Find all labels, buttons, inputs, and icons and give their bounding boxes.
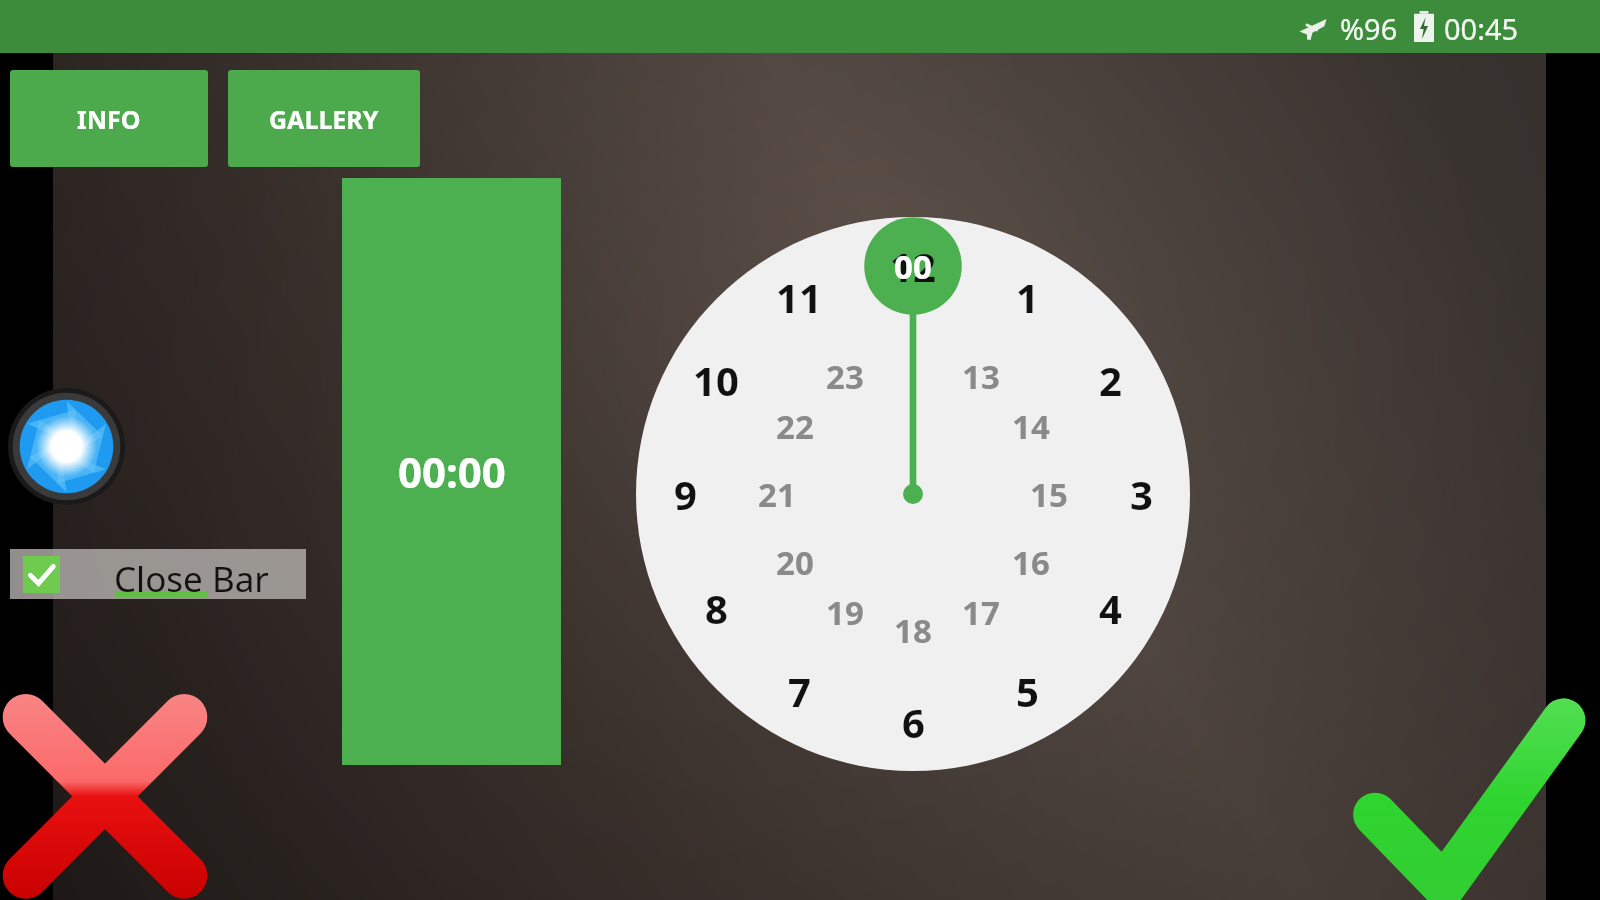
staticText: 14 [1012, 404, 1050, 449]
staticText: 18 [894, 608, 932, 653]
staticText: 00:00 [398, 443, 506, 500]
staticText: 16 [1012, 540, 1050, 585]
staticText: 20 [776, 540, 814, 585]
staticText: 1 [1016, 270, 1039, 324]
button[interactable]: INFO [10, 70, 208, 167]
staticText: 4 [1099, 581, 1122, 635]
staticText: 2 [1099, 353, 1122, 407]
staticText: 11 [776, 270, 822, 324]
staticText: INFO [77, 102, 141, 136]
button[interactable]: 1 [636, 217, 1190, 771]
staticText: 21 [758, 472, 796, 517]
staticText: 8 [705, 581, 728, 635]
staticText: 6 [902, 695, 925, 749]
staticText: 10 [693, 353, 739, 407]
button[interactable]: Cancel [0, 682, 215, 900]
staticText: 23 [826, 354, 864, 399]
staticText: 7 [788, 664, 811, 718]
button[interactable]: Confirm [1352, 688, 1582, 900]
staticText: 9 [674, 467, 697, 521]
button[interactable]: GALLERY [228, 70, 420, 167]
staticText: 17 [962, 590, 1000, 635]
button[interactable]: 00:00 [342, 178, 561, 765]
staticText: 22 [776, 404, 814, 449]
staticText: %96 [1340, 9, 1398, 48]
button[interactable]: Close Bar [10, 549, 306, 599]
staticText: 19 [826, 590, 864, 635]
staticText: 12 [890, 239, 936, 293]
staticText: GALLERY [269, 102, 379, 136]
staticText: 5 [1016, 664, 1039, 718]
staticText: 15 [1030, 472, 1068, 517]
staticText: 00 [894, 244, 932, 289]
staticText: Close Bar [114, 555, 269, 603]
button[interactable]: Camera [8, 388, 125, 505]
staticText: 13 [962, 354, 1000, 399]
staticText: 00:45 [1444, 9, 1519, 48]
staticText: 3 [1130, 467, 1153, 521]
